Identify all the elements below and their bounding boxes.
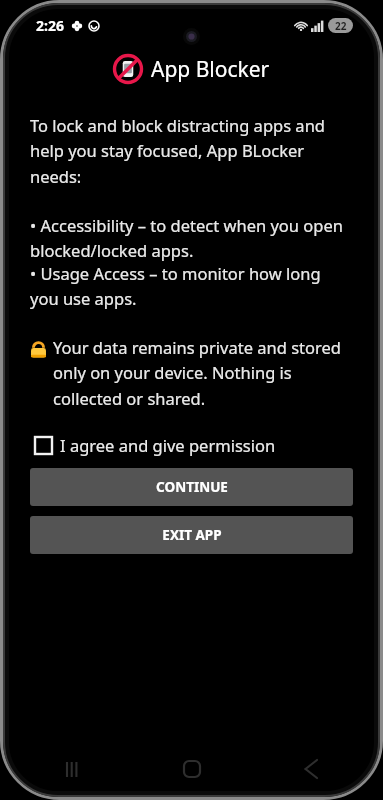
- staticText: CONTINUE: [156, 478, 228, 496]
- staticText: To lock and block distracting apps and h…: [30, 114, 353, 188]
- staticText: Your data remains private and stored onl…: [53, 336, 353, 410]
- staticText: • Accessibility – to detect when you ope…: [30, 214, 353, 262]
- button[interactable]: Home: [171, 748, 213, 790]
- staticText: 2:26: [36, 16, 64, 35]
- button[interactable]: Recent apps: [52, 748, 94, 790]
- staticText: I agree and give permission: [60, 434, 276, 456]
- button[interactable]: EXIT APP: [30, 516, 353, 554]
- button[interactable]: Back: [289, 748, 331, 790]
- staticText: 22: [335, 19, 347, 33]
- staticText: EXIT APP: [162, 526, 222, 544]
- other: App Blocker icon: [113, 54, 143, 84]
- button[interactable]: CONTINUE: [30, 468, 353, 506]
- button[interactable]: I agree and give permission: [30, 434, 276, 456]
- staticText: App Blocker: [151, 55, 270, 84]
- staticText: • Usage Access – to monitor how long you…: [30, 262, 353, 310]
